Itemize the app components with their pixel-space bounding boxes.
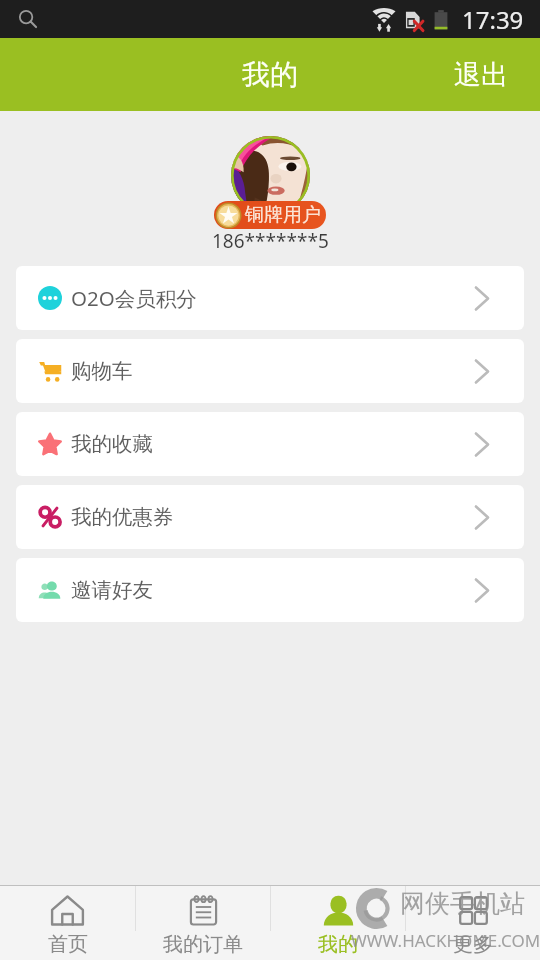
staticText: 网侠手机站 (400, 888, 525, 919)
button[interactable]: 铜牌用户 (214, 201, 326, 229)
staticText: WWW.HACKHOME.COM (351, 929, 540, 952)
staticText: 我的收藏 (71, 431, 153, 457)
staticText: 铜牌用户 (245, 203, 321, 227)
button[interactable]: 邀请好友 (16, 558, 524, 622)
button[interactable]: O2O会员积分 (16, 266, 524, 330)
staticText: 我的订单 (163, 932, 243, 957)
staticText: 退出 (454, 58, 508, 92)
staticText: 我的优惠券 (71, 504, 174, 530)
staticText: 首页 (48, 932, 88, 957)
staticText: 更多 (453, 932, 493, 957)
button[interactable]: 我的优惠券 (16, 485, 524, 549)
staticText: 我的 (242, 57, 298, 92)
staticText: 我的 (318, 932, 358, 957)
staticText: 186*******5 (212, 228, 329, 254)
button[interactable]: 首页 (0, 886, 135, 957)
button[interactable]: 我的 (271, 886, 405, 957)
button[interactable]: 我的收藏 (16, 412, 524, 476)
staticText: 17:39 (462, 3, 524, 36)
button[interactable]: 退出 (434, 42, 540, 108)
button[interactable]: 购物车 (16, 339, 524, 403)
staticText: 购物车 (71, 358, 133, 384)
button[interactable]: Profile photo (231, 136, 310, 215)
button[interactable]: 我的订单 (136, 886, 270, 957)
staticText: 邀请好友 (71, 577, 153, 603)
staticText: O2O会员积分 (71, 284, 197, 312)
button[interactable]: 更多 (406, 886, 540, 957)
